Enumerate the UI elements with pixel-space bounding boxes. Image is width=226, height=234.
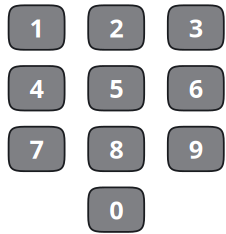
staticText: 1 bbox=[30, 11, 44, 44]
staticText: 6 bbox=[189, 71, 203, 105]
button[interactable]: 8 bbox=[88, 127, 144, 171]
button[interactable]: 6 bbox=[168, 66, 224, 110]
button[interactable]: 0 bbox=[88, 187, 144, 232]
button[interactable]: 5 bbox=[88, 66, 144, 110]
button[interactable]: 3 bbox=[168, 5, 224, 50]
button[interactable]: 2 bbox=[88, 5, 144, 50]
staticText: 8 bbox=[109, 132, 123, 166]
staticText: 7 bbox=[30, 132, 44, 166]
staticText: 9 bbox=[189, 132, 203, 166]
staticText: 2 bbox=[109, 11, 123, 44]
staticText: 3 bbox=[189, 11, 203, 44]
button[interactable]: 9 bbox=[168, 127, 224, 171]
staticText: 4 bbox=[30, 71, 44, 105]
button[interactable]: 7 bbox=[9, 127, 65, 171]
staticText: 0 bbox=[109, 193, 123, 226]
staticText: 5 bbox=[109, 71, 123, 105]
button[interactable]: 1 bbox=[9, 5, 65, 50]
button[interactable]: 4 bbox=[9, 66, 65, 110]
